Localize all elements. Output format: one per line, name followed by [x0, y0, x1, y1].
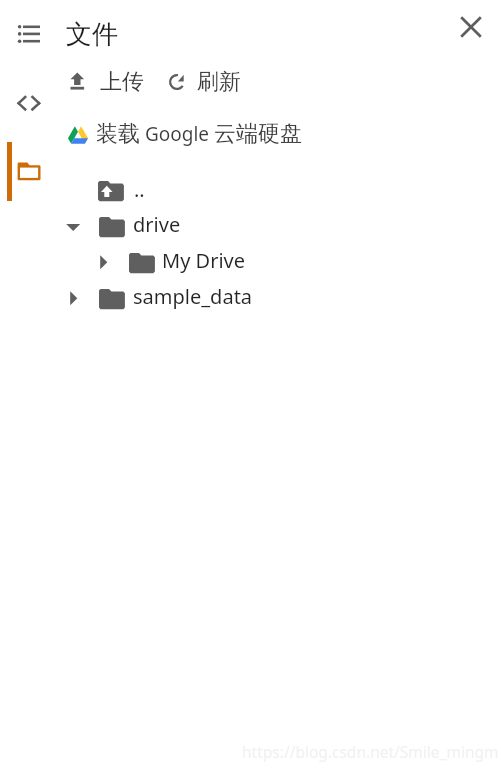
- button[interactable]: 刷新: [163, 64, 243, 96]
- button[interactable]: sample_data: [99, 285, 229, 313]
- staticText: 上传: [100, 68, 144, 96]
- button[interactable]: Table of contents: [8, 16, 44, 52]
- staticText: 文件: [66, 18, 118, 51]
- button[interactable]: Files: [13, 155, 45, 187]
- staticText: ..: [134, 176, 145, 203]
- button[interactable]: Code snippets: [10, 88, 42, 120]
- button[interactable]: My Drive: [129, 249, 259, 277]
- button[interactable]: Close: [455, 11, 487, 43]
- button[interactable]: 装载 Google 云端硬盘: [62, 117, 302, 147]
- staticText: My Drive: [162, 247, 245, 274]
- staticText: 装载 Google 云端硬盘: [96, 120, 303, 148]
- staticText: sample_data: [133, 283, 253, 310]
- button[interactable]: 上传: [64, 64, 144, 96]
- button[interactable]: ..: [98, 176, 145, 203]
- button[interactable]: Expand My Drive: [95, 248, 119, 274]
- button[interactable]: drive: [99, 213, 229, 241]
- staticText: 刷新: [197, 68, 241, 96]
- staticText: https://blog.csdn.net/Smile_mingm: [242, 741, 499, 762]
- staticText: drive: [133, 211, 181, 238]
- button[interactable]: Expand sample_data: [65, 284, 89, 310]
- button[interactable]: Collapse drive: [62, 216, 86, 242]
